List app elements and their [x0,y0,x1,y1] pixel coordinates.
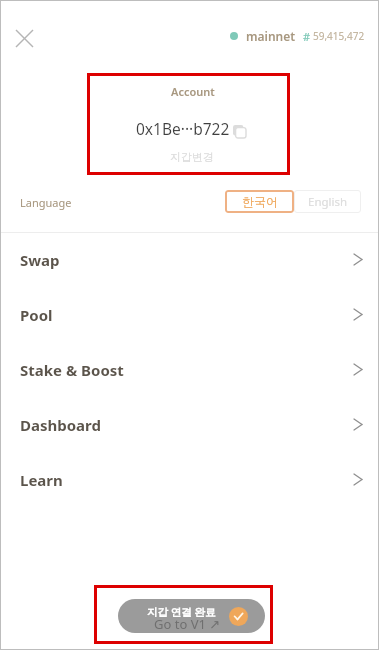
button[interactable]: 지갑 연결 완료 [118,599,265,633]
button[interactable]: Dashboard [0,397,379,452]
staticText: English [308,194,348,210]
button[interactable]: Close [6,20,42,56]
button[interactable]: Stake & Boost [0,342,379,397]
staticText: Swap [20,250,60,270]
staticText: mainnet [246,28,296,44]
staticText: 지갑변경 [170,150,214,164]
button[interactable]: Copy address [230,120,248,138]
staticText: Dashboard [20,415,101,435]
staticText: Pool [20,305,53,325]
staticText: 59,415,472 [313,29,365,43]
button[interactable]: 지갑변경 [170,150,214,164]
staticText: Account [171,84,215,99]
button[interactable]: 한국어 [225,190,294,213]
staticText: 지갑 연결 완료 [147,605,216,619]
staticText: Stake & Boost [20,360,124,380]
staticText: Go to V1 ↗ [154,615,221,633]
button[interactable]: Pool [0,287,379,342]
staticText: Language [20,195,72,210]
staticText: Learn [20,470,63,490]
button[interactable]: English [294,190,361,213]
staticText: 한국어 [242,194,278,209]
staticText: # [303,29,311,44]
staticText: 0x1Be···b722 [136,118,230,139]
button[interactable]: Learn [0,452,379,507]
button[interactable]: Swap [0,232,379,287]
